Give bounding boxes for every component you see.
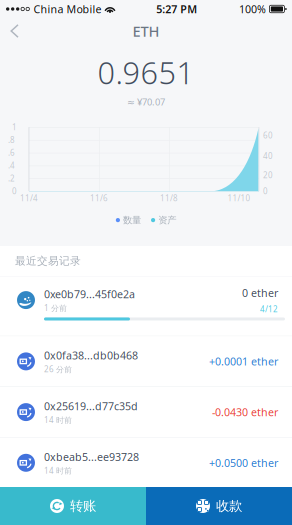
staticText: .6 — [8, 147, 15, 158]
staticText: 5:27 PM — [156, 2, 197, 16]
staticText: ≈ ¥70.07 — [127, 96, 165, 108]
staticText: 11/8 — [160, 193, 178, 203]
button[interactable]: 0xe0b79...45f0e2a — [0, 277, 292, 336]
staticText: 0xe0b79...45f0e2a — [44, 287, 135, 301]
staticText: 11/4 — [20, 193, 38, 203]
staticText: 最近交易记录 — [15, 254, 81, 267]
staticText: .2 — [8, 173, 15, 184]
button[interactable]: 0x0fa38...db0b468 — [0, 336, 292, 386]
staticText: 0 — [12, 186, 17, 196]
staticText: 收款 — [216, 498, 242, 514]
staticText: ETH — [132, 21, 159, 41]
staticText: +0.0500 ether — [209, 456, 278, 470]
staticText: 26 分前 — [44, 364, 72, 374]
staticText: 4/12 — [260, 304, 278, 314]
staticText: 0x25619...d77c35d — [44, 399, 138, 413]
staticText: 14 时前 — [44, 465, 72, 476]
staticText: 60 — [263, 130, 273, 141]
button[interactable]: 0xbeab5...ee93728 — [0, 438, 292, 488]
staticText: 转账 — [70, 498, 96, 514]
staticText: 0.9651 — [97, 52, 194, 93]
button[interactable]: Back — [0, 18, 33, 44]
button[interactable]: 收款 — [146, 487, 292, 525]
button[interactable]: 转账 — [0, 487, 146, 525]
staticText: 14 时前 — [44, 415, 72, 425]
staticText: .8 — [8, 135, 15, 145]
staticText: -0.0430 ether — [212, 405, 278, 419]
staticText: 11/6 — [90, 193, 108, 203]
staticText: 0xbeab5...ee93728 — [44, 450, 139, 464]
staticText: 数量 — [123, 214, 141, 226]
staticText: 1 — [12, 122, 17, 132]
staticText: +0.0001 ether — [209, 354, 278, 368]
button[interactable]: 0x25619...d77c35d — [0, 387, 292, 437]
staticText: China Mobile — [33, 2, 101, 16]
staticText: 100% — [239, 2, 266, 16]
staticText: 0x0fa38...db0b468 — [44, 348, 138, 362]
staticText: 0 ether — [242, 286, 278, 300]
staticText: 0 — [263, 186, 268, 196]
staticText: 1 分前 — [44, 303, 67, 313]
staticText: 资产 — [158, 214, 176, 226]
staticText: 40 — [263, 151, 273, 161]
staticText: 20 — [263, 170, 273, 180]
staticText: .4 — [8, 160, 15, 171]
staticText: 11/10 — [227, 193, 250, 203]
